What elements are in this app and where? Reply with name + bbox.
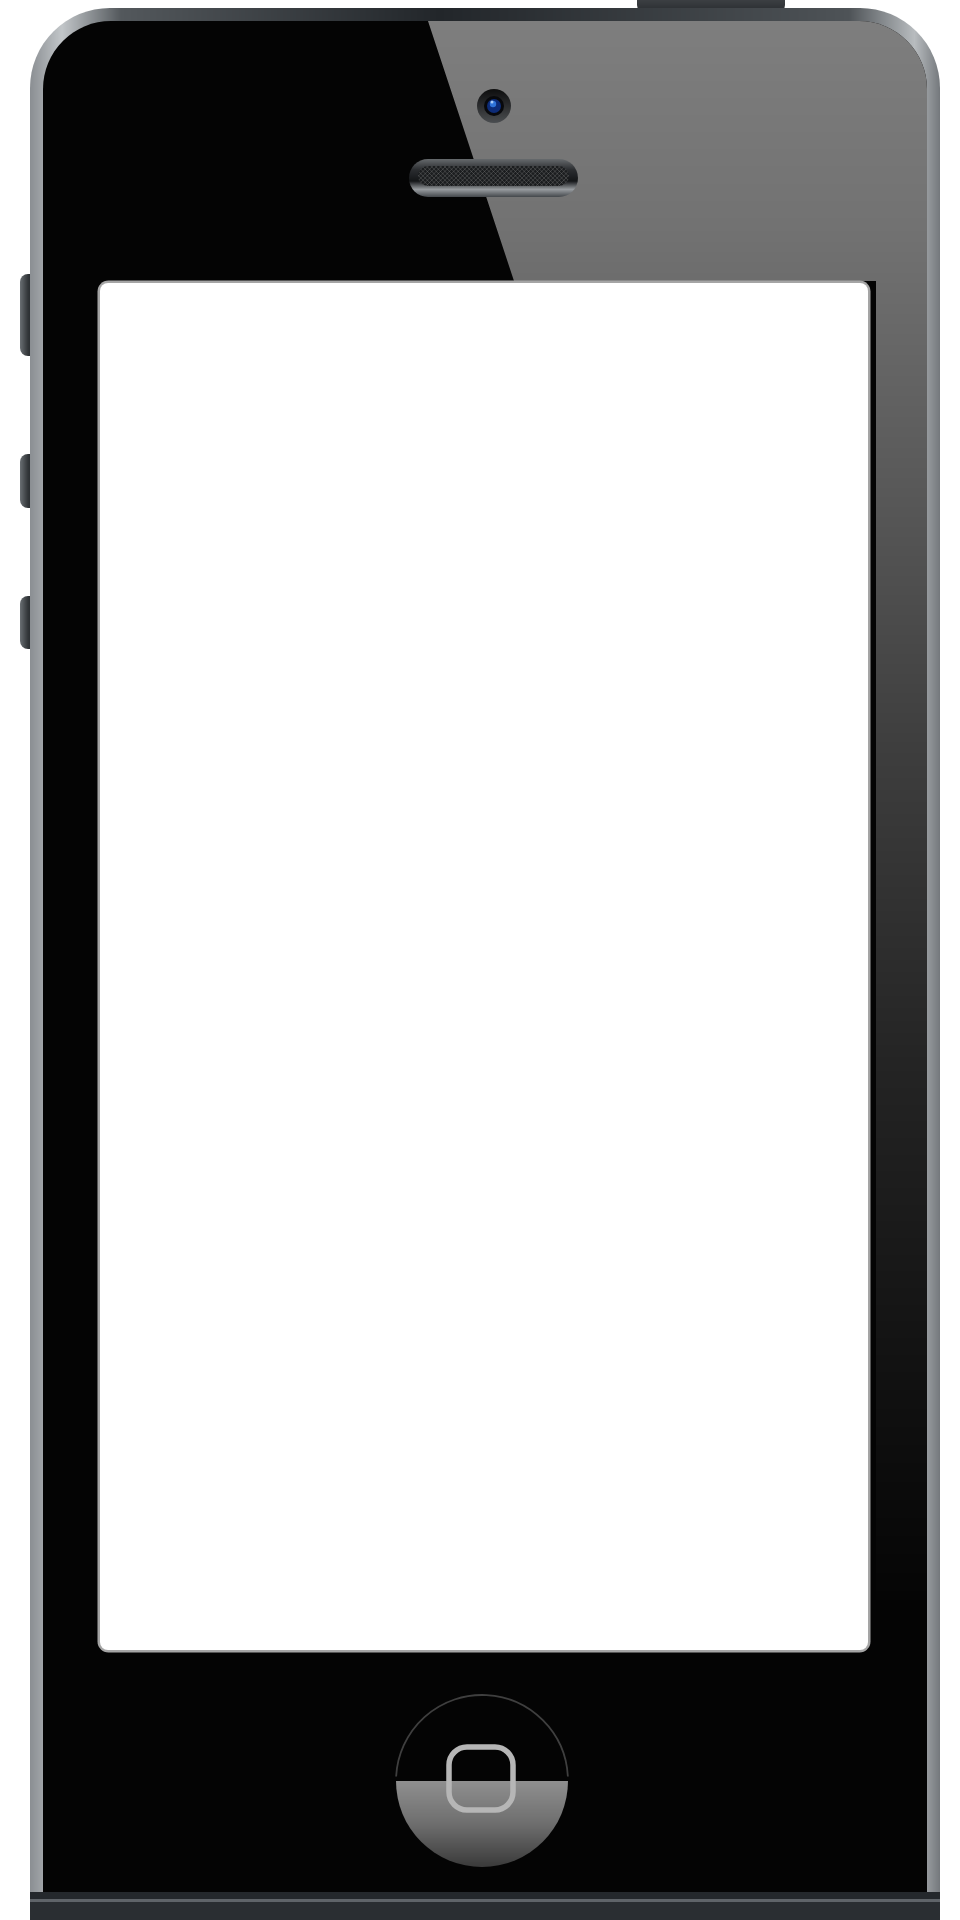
button[interactable]: Silent switch xyxy=(20,274,40,356)
button[interactable]: Home xyxy=(396,1695,568,1867)
button[interactable]: Volume up xyxy=(20,454,40,508)
button[interactable]: Power xyxy=(637,0,785,16)
button[interactable]: Volume down xyxy=(20,596,40,649)
